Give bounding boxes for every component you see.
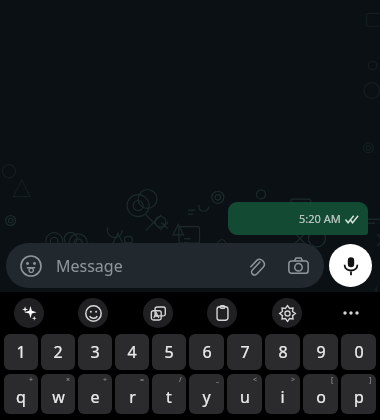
button[interactable]: AI assist: [14, 298, 44, 328]
staticText: 2: [53, 341, 63, 363]
staticText: <: [253, 375, 258, 385]
button[interactable]: Settings: [272, 298, 302, 328]
button[interactable]: Attach: [242, 252, 270, 280]
staticText: ]: [369, 375, 372, 385]
staticText: 8: [278, 341, 288, 363]
staticText: /: [179, 375, 182, 385]
staticText: 1: [16, 341, 26, 363]
button[interactable]: [: [303, 374, 338, 414]
staticText: w: [52, 386, 65, 408]
staticText: _: [216, 375, 220, 385]
button[interactable]: 7: [227, 334, 262, 370]
staticText: ×: [66, 375, 71, 385]
button[interactable]: Emoji: [18, 253, 44, 279]
button[interactable]: 5: [152, 334, 186, 370]
staticText: >: [291, 375, 296, 385]
staticText: 6: [202, 341, 212, 363]
button[interactable]: /: [152, 374, 186, 414]
staticText: 5:20 AM: [299, 211, 341, 226]
button[interactable]: +: [4, 374, 38, 414]
staticText: i: [280, 386, 285, 408]
button[interactable]: 4: [115, 334, 149, 370]
button[interactable]: 9: [303, 334, 338, 370]
button[interactable]: 2: [41, 334, 75, 370]
button[interactable]: Translate: [143, 298, 173, 328]
button[interactable]: 8: [265, 334, 300, 370]
staticText: Message: [56, 255, 123, 277]
button[interactable]: 5:20 AM: [228, 202, 368, 235]
button[interactable]: Camera: [284, 252, 312, 280]
button[interactable]: Emoji: [6, 243, 324, 288]
button[interactable]: _: [189, 374, 224, 414]
staticText: =: [140, 375, 145, 385]
button[interactable]: ]: [341, 374, 376, 414]
staticText: p: [354, 386, 364, 408]
button[interactable]: 6: [189, 334, 224, 370]
staticText: t: [166, 386, 172, 408]
staticText: r: [129, 386, 136, 408]
staticText: +: [29, 375, 34, 385]
staticText: 3: [90, 341, 100, 363]
staticText: ÷: [103, 375, 108, 385]
staticText: e: [90, 386, 100, 408]
button[interactable]: More options: [336, 298, 366, 328]
button[interactable]: Emoji keyboard: [78, 298, 108, 328]
button[interactable]: =: [115, 374, 149, 414]
staticText: 9: [316, 341, 326, 363]
button[interactable]: Clipboard: [207, 298, 237, 328]
button[interactable]: >: [265, 374, 300, 414]
staticText: [: [331, 375, 334, 385]
button[interactable]: 1: [4, 334, 38, 370]
staticText: 4: [127, 341, 137, 363]
button[interactable]: 3: [78, 334, 112, 370]
button[interactable]: ÷: [78, 374, 112, 414]
staticText: u: [240, 386, 250, 408]
staticText: o: [316, 386, 326, 408]
staticText: 7: [240, 341, 250, 363]
button[interactable]: <: [227, 374, 262, 414]
button[interactable]: 0: [341, 334, 376, 370]
staticText: 0: [354, 341, 364, 363]
button[interactable]: ×: [41, 374, 75, 414]
staticText: y: [202, 386, 211, 408]
button[interactable]: Voice message: [329, 244, 372, 287]
staticText: 5: [164, 341, 174, 363]
staticText: q: [16, 386, 26, 408]
